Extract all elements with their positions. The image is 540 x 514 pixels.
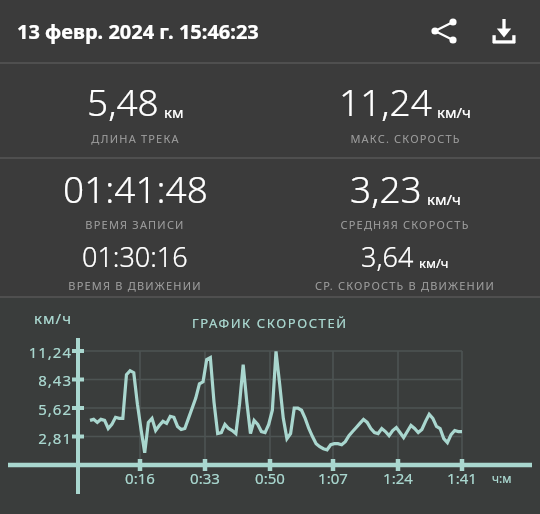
staticText: км bbox=[164, 102, 184, 122]
staticText: 5,62 bbox=[14, 399, 72, 419]
staticText: 01:41:48 bbox=[63, 163, 208, 213]
staticText: 3,23 bbox=[350, 163, 422, 213]
staticText: СР. СКОРОСТЬ В ДВИЖЕНИИ bbox=[315, 278, 495, 293]
staticText: 5,48 bbox=[87, 76, 159, 126]
staticText: СРЕДНЯЯ СКОРОСТЬ bbox=[340, 217, 470, 232]
staticText: 1:41 bbox=[437, 468, 487, 488]
staticText: 8,43 bbox=[14, 370, 72, 390]
staticText: 01:30:16 bbox=[82, 238, 188, 275]
button[interactable]: Download bbox=[480, 7, 528, 55]
staticText: 1:24 bbox=[373, 468, 423, 488]
staticText: ВРЕМЯ В ДВИЖЕНИИ bbox=[68, 278, 202, 293]
staticText: 3,64 bbox=[361, 238, 414, 275]
staticText: 1:07 bbox=[308, 468, 358, 488]
staticText: ч:м bbox=[492, 470, 512, 486]
staticText: ГРАФИК СКОРОСТЕЙ bbox=[192, 314, 348, 332]
staticText: км/ч bbox=[14, 308, 72, 328]
staticText: км/ч bbox=[419, 254, 449, 272]
staticText: 13 февр. 2024 г. 15:46:23 bbox=[17, 18, 259, 45]
staticText: км/ч bbox=[437, 102, 471, 122]
staticText: 11,24 bbox=[339, 76, 432, 126]
staticText: 0:33 bbox=[180, 468, 230, 488]
staticText: 0:16 bbox=[115, 468, 165, 488]
staticText: 11,24 bbox=[14, 342, 72, 362]
staticText: ДЛИНА ТРЕКА bbox=[91, 131, 180, 146]
button[interactable]: Share bbox=[420, 7, 468, 55]
staticText: ВРЕМЯ ЗАПИСИ bbox=[85, 217, 185, 232]
staticText: 0:50 bbox=[245, 468, 295, 488]
staticText: км/ч bbox=[427, 189, 461, 209]
staticText: МАКС. СКОРОСТЬ bbox=[350, 131, 461, 146]
staticText: 2,81 bbox=[14, 428, 72, 448]
